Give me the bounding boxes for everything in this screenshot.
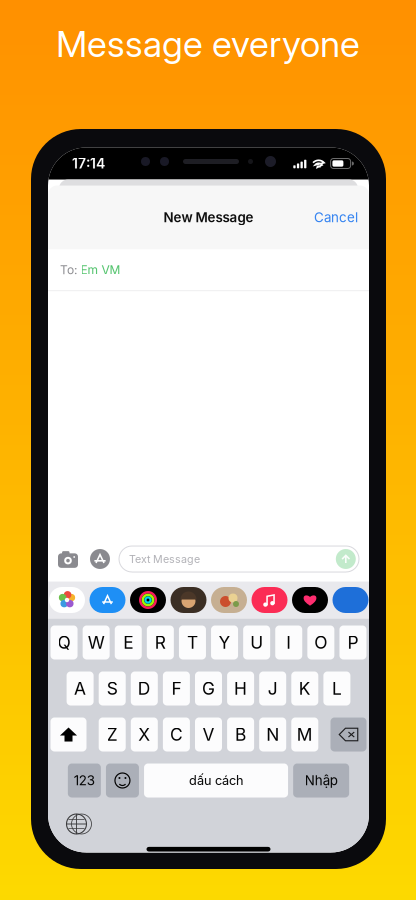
button[interactable]: E [115, 625, 142, 659]
staticText: U [250, 632, 263, 653]
button[interactable]: V [195, 717, 222, 751]
button[interactable]: W [83, 625, 110, 659]
button[interactable]: M [291, 717, 318, 751]
staticText: H [234, 678, 247, 699]
staticText: 123 [74, 772, 95, 788]
staticText: O [314, 632, 327, 653]
button[interactable]: H [227, 671, 254, 705]
staticText: W [88, 632, 105, 653]
button[interactable]: Change keyboard [66, 813, 87, 834]
staticText: Y [219, 632, 231, 653]
button[interactable]: D [131, 671, 158, 705]
button[interactable]: Cancel [303, 199, 369, 235]
staticText: E [123, 632, 133, 653]
button[interactable]: N [259, 717, 286, 751]
staticText: V [202, 724, 214, 745]
staticText: A [74, 678, 86, 699]
staticText: Z [107, 724, 118, 745]
staticText: Cancel [314, 209, 358, 225]
button[interactable]: L [323, 671, 350, 705]
staticText: R [155, 632, 166, 653]
staticText: C [170, 724, 183, 745]
button[interactable]: Emoji [106, 763, 139, 797]
staticText: I [286, 632, 291, 653]
button[interactable]: B [227, 717, 254, 751]
staticText: N [266, 724, 279, 745]
staticText: Nhập [305, 772, 338, 788]
staticText: To: [60, 263, 77, 277]
button[interactable]: Nhập [293, 763, 349, 797]
staticText: D [138, 678, 151, 699]
staticText: T [187, 632, 198, 653]
staticText: L [332, 678, 342, 699]
button[interactable]: P [339, 625, 366, 659]
button[interactable]: 123 [68, 763, 101, 797]
button[interactable]: I [275, 625, 302, 659]
button[interactable]: A [67, 671, 94, 705]
staticText: G [202, 678, 215, 699]
button[interactable]: Y [211, 625, 238, 659]
staticText: M [297, 724, 313, 745]
staticText: P [347, 632, 358, 653]
button[interactable]: O [307, 625, 334, 659]
staticText: X [138, 724, 150, 745]
staticText: Em VM [80, 263, 120, 277]
staticText: Q [58, 632, 71, 653]
staticText: Message everyone [56, 22, 360, 66]
button[interactable]: Q [51, 625, 78, 659]
button[interactable]: dấu cách [144, 763, 288, 797]
staticText: dấu cách [189, 773, 243, 788]
button[interactable]: C [163, 717, 190, 751]
button[interactable]: Z [99, 717, 126, 751]
button[interactable]: Apps [90, 549, 110, 569]
button[interactable]: Camera [57, 548, 79, 569]
staticText: B [235, 724, 246, 745]
staticText: 17:14 [72, 155, 105, 172]
button[interactable]: J [259, 671, 286, 705]
staticText: Text Message [129, 552, 200, 565]
button[interactable]: G [195, 671, 222, 705]
staticText: F [171, 678, 181, 699]
staticText: J [268, 678, 278, 699]
button[interactable]: F [163, 671, 190, 705]
button[interactable]: S [99, 671, 126, 705]
button[interactable]: Delete [330, 717, 366, 751]
button[interactable]: K [291, 671, 318, 705]
staticText: New Message [163, 209, 253, 225]
button[interactable]: U [243, 625, 270, 659]
button[interactable]: R [147, 625, 174, 659]
button[interactable]: Shift [50, 717, 86, 751]
button[interactable]: T [179, 625, 206, 659]
button[interactable]: X [131, 717, 158, 751]
staticText: S [107, 678, 118, 699]
staticText: K [299, 678, 311, 699]
